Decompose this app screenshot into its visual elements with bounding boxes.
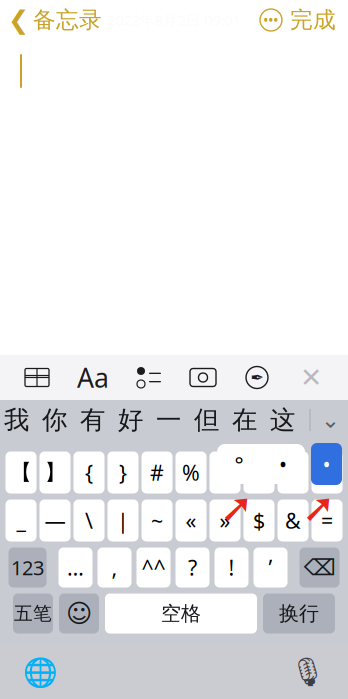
staticText: 五笔 (14, 602, 52, 625)
staticText: ⌫ (303, 555, 335, 580)
staticText: 完成 (290, 6, 336, 34)
staticText: — (44, 506, 65, 535)
staticText: 】 (44, 459, 65, 486)
staticText: 这 (270, 404, 295, 435)
staticText: + (321, 458, 333, 487)
button[interactable]: # (141, 451, 172, 493)
button[interactable]: 】 (39, 451, 70, 493)
button[interactable]: ? (175, 547, 209, 587)
button[interactable]: = (311, 499, 342, 541)
button[interactable]: 更多 (256, 5, 286, 35)
button[interactable]: 五笔 (13, 593, 53, 633)
staticText: # (150, 458, 164, 487)
staticText: 好 (118, 404, 143, 435)
button[interactable]: 完成 (286, 0, 348, 40)
staticText: » (219, 506, 230, 535)
staticText: ✕ (300, 362, 322, 393)
button[interactable]: … (58, 547, 92, 587)
staticText: ? (188, 553, 197, 582)
button[interactable]: 123 (8, 547, 46, 587)
button[interactable]: ’ (253, 547, 287, 587)
button[interactable]: { (73, 451, 104, 493)
button[interactable]: _ (5, 499, 36, 541)
staticText: 你 (42, 404, 67, 435)
staticText: « (185, 506, 196, 535)
staticText: • (322, 450, 330, 478)
button[interactable]: 格式 (74, 360, 112, 394)
button[interactable]: » (209, 499, 240, 541)
staticText: \ (85, 506, 93, 535)
staticText: Aa (77, 360, 109, 395)
button[interactable]: 在 (225, 401, 263, 439)
staticText: ^^ (141, 553, 165, 582)
button[interactable]: + (311, 451, 342, 493)
button[interactable]: & (277, 499, 308, 541)
button[interactable]: ! (214, 547, 248, 587)
button[interactable]: • (277, 451, 308, 493)
staticText: | (117, 506, 129, 535)
staticText: , (111, 553, 117, 582)
staticText: % (182, 458, 200, 487)
staticText: 一 (156, 404, 181, 435)
button[interactable]: 表情 (59, 593, 99, 633)
button[interactable]: ❮ (0, 0, 102, 40)
button[interactable]: $ (243, 499, 274, 541)
button[interactable]: 表格 (20, 360, 54, 394)
staticText: } (119, 458, 127, 487)
button[interactable]: 换行 (263, 593, 335, 633)
staticText: ~ (151, 506, 163, 535)
staticText: 我 (4, 404, 29, 435)
staticText: = (321, 506, 333, 535)
staticText: ⌄ (321, 407, 340, 433)
button[interactable]: 这 (263, 401, 301, 439)
button[interactable]: 空格 (105, 593, 257, 633)
staticText: _ (16, 506, 25, 535)
staticText: { (85, 458, 93, 487)
button[interactable]: 【 (5, 451, 36, 493)
button[interactable]: 相机 (186, 360, 220, 394)
staticText: 🌐 (22, 656, 57, 688)
button[interactable]: ^^ (136, 547, 170, 587)
button[interactable]: % (175, 451, 206, 493)
staticText: • (279, 450, 287, 478)
button[interactable]: 清单 (132, 360, 166, 394)
button[interactable]: ~ (141, 499, 172, 541)
button[interactable]: | (107, 499, 138, 541)
button[interactable]: } (107, 451, 138, 493)
staticText: … (67, 553, 84, 582)
staticText: 【 (10, 459, 31, 486)
button[interactable]: 你 (35, 401, 73, 439)
staticText: ➚ (302, 485, 336, 530)
staticText: 123 (11, 554, 44, 581)
staticText: 备忘录 (33, 6, 102, 34)
button[interactable]: 标记 (240, 360, 274, 394)
button[interactable]: ° (243, 451, 274, 493)
button[interactable]: 一 (149, 401, 187, 439)
button[interactable]: 删除 (299, 547, 339, 587)
staticText: 在 (232, 404, 257, 435)
staticText: ’ (268, 553, 272, 582)
button[interactable]: \ (73, 499, 104, 541)
button[interactable]: 语音输入 (286, 650, 330, 694)
staticText: & (285, 506, 301, 535)
button[interactable]: 关闭 (294, 360, 328, 394)
staticText: 换行 (279, 601, 319, 626)
button[interactable]: 有 (73, 401, 111, 439)
staticText: ➚ (220, 485, 254, 530)
staticText: 但 (194, 404, 219, 435)
button[interactable]: « (175, 499, 206, 541)
button[interactable]: , (97, 547, 131, 587)
staticText: ☺ (66, 599, 92, 628)
button[interactable]: ^ (209, 451, 240, 493)
button[interactable]: 切换键盘 (18, 650, 62, 694)
staticText: $ (253, 506, 265, 535)
button[interactable]: 好 (111, 401, 149, 439)
button[interactable]: 我 (0, 401, 35, 439)
button[interactable]: — (39, 499, 70, 541)
button[interactable]: 收起候选 (310, 401, 348, 439)
button[interactable]: 但 (187, 401, 225, 439)
staticText: 空格 (161, 601, 201, 626)
